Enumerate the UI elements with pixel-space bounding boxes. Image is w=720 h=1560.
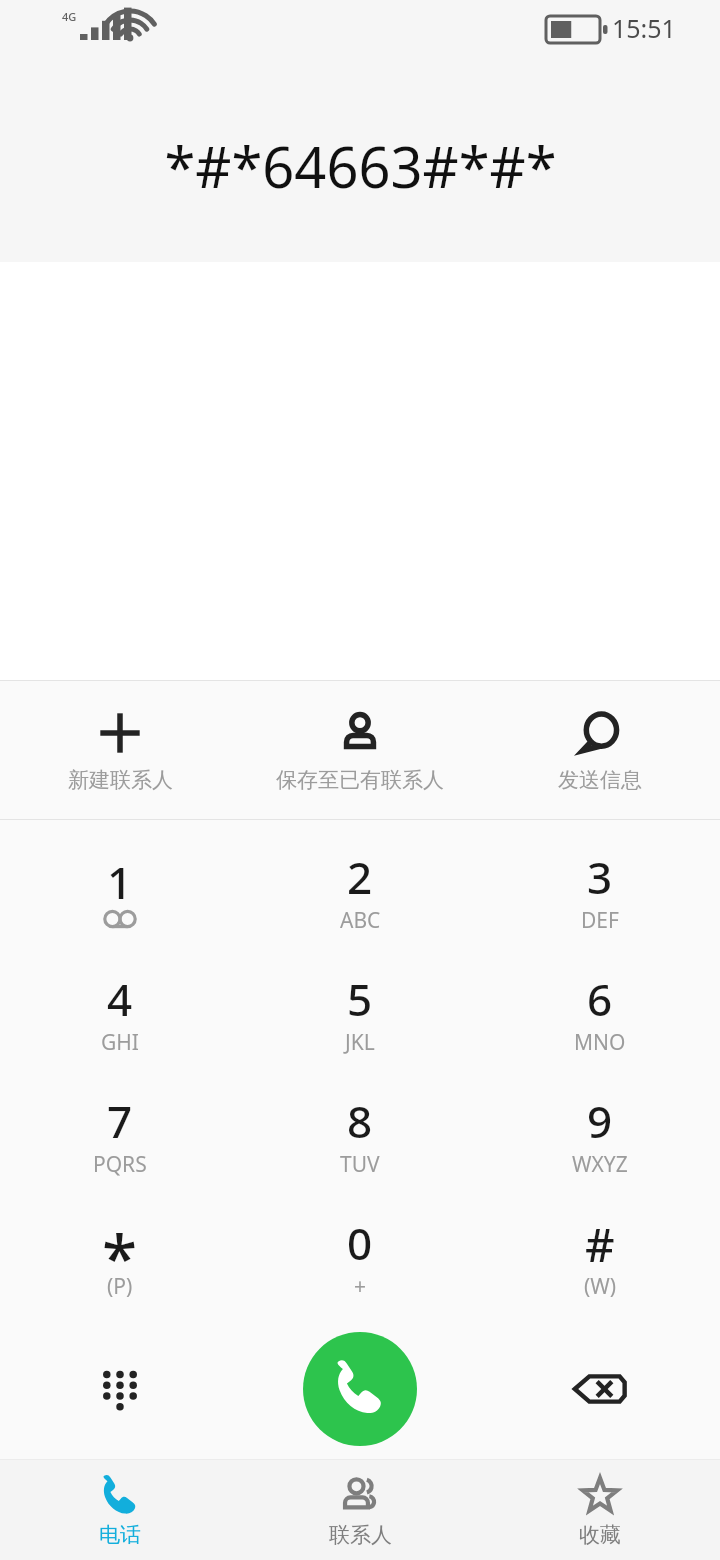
- staticText: 收藏: [579, 1522, 621, 1548]
- staticText: WXYZ: [572, 1150, 628, 1179]
- staticText: 3: [587, 847, 613, 901]
- staticText: (W): [584, 1272, 617, 1301]
- staticText: (P): [107, 1272, 133, 1301]
- staticText: JKL: [345, 1028, 375, 1057]
- staticText: #: [585, 1213, 615, 1267]
- button[interactable]: 7: [0, 1074, 240, 1196]
- staticText: 发送信息: [558, 767, 642, 793]
- button[interactable]: 9: [480, 1074, 720, 1196]
- staticText: 4G: [62, 9, 77, 24]
- button[interactable]: 发送信息: [480, 681, 720, 819]
- button[interactable]: 1: [0, 830, 240, 952]
- staticText: 1: [107, 852, 133, 906]
- staticText: 9: [587, 1091, 613, 1145]
- staticText: 6: [587, 969, 613, 1023]
- button[interactable]: 5: [240, 952, 480, 1074]
- button[interactable]: 电话: [0, 1460, 240, 1560]
- staticText: TUV: [340, 1150, 380, 1179]
- button[interactable]: 4: [0, 952, 240, 1074]
- staticText: 4: [107, 969, 133, 1023]
- button[interactable]: 3: [480, 830, 720, 952]
- button[interactable]: 0: [240, 1196, 480, 1318]
- button[interactable]: 6: [480, 952, 720, 1074]
- button[interactable]: 收藏: [480, 1460, 720, 1560]
- button[interactable]: Backspace: [480, 1318, 720, 1459]
- staticText: 电话: [99, 1522, 141, 1548]
- staticText: 保存至已有联系人: [276, 767, 444, 793]
- staticText: +: [354, 1272, 367, 1301]
- button[interactable]: #: [480, 1196, 720, 1318]
- button[interactable]: 保存至已有联系人: [240, 681, 480, 819]
- staticText: PQRS: [93, 1150, 147, 1179]
- button[interactable]: Show dialpad: [0, 1318, 240, 1459]
- button[interactable]: 2: [240, 830, 480, 952]
- staticText: 联系人: [329, 1522, 392, 1548]
- staticText: 2: [347, 847, 373, 901]
- staticText: *: [102, 1213, 138, 1267]
- button[interactable]: 8: [240, 1074, 480, 1196]
- staticText: 8: [347, 1091, 373, 1145]
- button[interactable]: Call: [303, 1332, 417, 1446]
- button[interactable]: 新建联系人: [0, 681, 240, 819]
- staticText: 15:51: [612, 11, 676, 45]
- staticText: DEF: [581, 906, 619, 935]
- staticText: 5: [347, 969, 373, 1023]
- staticText: 新建联系人: [68, 767, 173, 793]
- staticText: ABC: [340, 906, 381, 935]
- staticText: MNO: [574, 1028, 626, 1057]
- staticText: *#*64663#*#*: [164, 128, 557, 204]
- staticText: GHI: [101, 1028, 139, 1057]
- button[interactable]: 联系人: [240, 1460, 480, 1560]
- staticText: 7: [107, 1091, 133, 1145]
- staticText: 0: [347, 1213, 373, 1267]
- button[interactable]: *: [0, 1196, 240, 1318]
